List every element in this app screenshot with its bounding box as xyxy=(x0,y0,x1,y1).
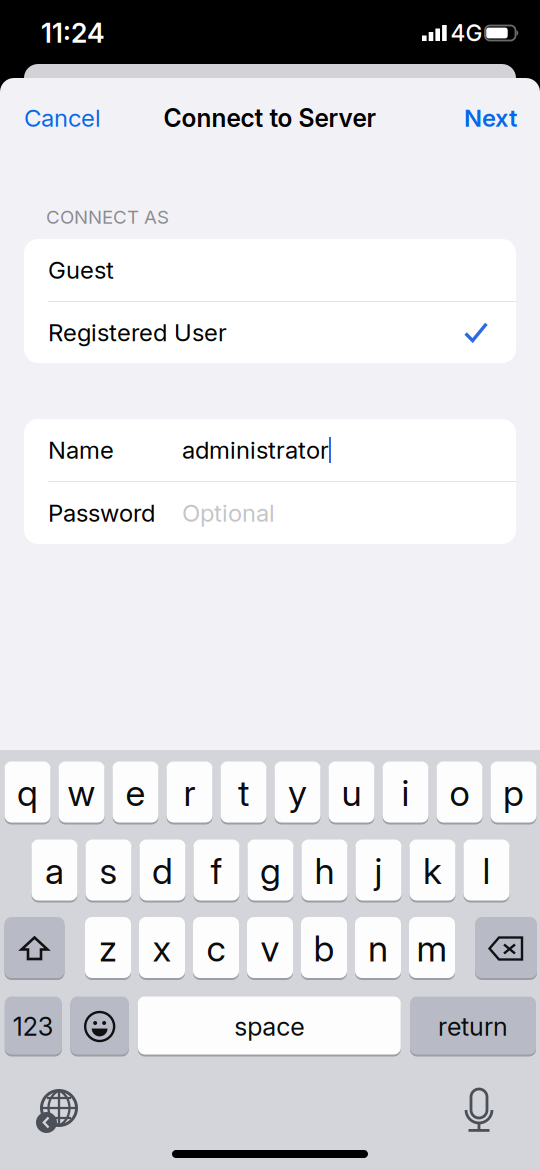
staticText: t xyxy=(238,771,249,815)
staticText: Cancel xyxy=(24,103,101,132)
staticText: Name xyxy=(48,435,114,464)
button[interactable]: f xyxy=(193,839,239,902)
button[interactable]: b xyxy=(301,917,347,980)
button[interactable]: Emoji xyxy=(70,996,129,1056)
button[interactable]: y xyxy=(274,761,320,824)
staticText: j xyxy=(374,849,382,893)
button[interactable]: Cancel xyxy=(16,96,109,140)
staticText: return xyxy=(438,1011,508,1042)
staticText: r xyxy=(183,771,195,815)
button[interactable]: m xyxy=(409,917,455,980)
staticText: Guest xyxy=(48,255,114,284)
staticText: o xyxy=(449,771,469,815)
button[interactable]: k xyxy=(409,839,455,902)
button[interactable]: Delete xyxy=(475,917,537,980)
button[interactable]: Optional xyxy=(182,482,492,544)
staticText: i xyxy=(401,771,409,815)
staticText: Registered User xyxy=(48,318,227,347)
button[interactable]: s xyxy=(85,839,131,902)
staticText: u xyxy=(341,771,361,815)
staticText: p xyxy=(503,771,524,815)
button[interactable]: t xyxy=(220,761,266,824)
button[interactable]: o xyxy=(436,761,482,824)
button[interactable]: v xyxy=(247,917,293,980)
staticText: CONNECT AS xyxy=(46,206,169,228)
staticText: q xyxy=(17,771,38,815)
staticText: d xyxy=(152,849,173,893)
button[interactable]: d xyxy=(139,839,185,902)
staticText: g xyxy=(260,849,281,893)
staticText: c xyxy=(206,927,225,970)
button[interactable]: r xyxy=(166,761,212,824)
button[interactable]: e xyxy=(112,761,158,824)
button[interactable]: h xyxy=(301,839,347,902)
staticText: x xyxy=(152,927,171,970)
button[interactable]: Next keyboard xyxy=(36,1089,82,1133)
staticText: Optional xyxy=(182,498,275,527)
button[interactable]: space xyxy=(138,996,401,1056)
staticText: Next xyxy=(464,103,517,132)
button[interactable]: a xyxy=(31,839,77,902)
button[interactable]: Next xyxy=(456,96,525,140)
staticText: y xyxy=(288,771,307,815)
staticText: s xyxy=(99,849,117,893)
button[interactable]: u xyxy=(328,761,374,824)
button[interactable]: Shift xyxy=(4,917,64,980)
staticText: v xyxy=(260,927,279,970)
staticText: Password xyxy=(48,498,155,527)
staticText: administrator xyxy=(182,435,329,464)
button[interactable]: x xyxy=(139,917,185,980)
staticText: n xyxy=(368,927,388,970)
staticText: f xyxy=(210,849,222,893)
staticText: k xyxy=(423,849,442,893)
button[interactable]: l xyxy=(463,839,509,902)
button[interactable]: return xyxy=(410,996,536,1056)
button[interactable]: Registered User xyxy=(24,302,516,363)
staticText: 4G xyxy=(450,19,482,47)
button[interactable]: Dictation xyxy=(461,1089,497,1133)
staticText: b xyxy=(313,927,334,970)
staticText: Connect to Server xyxy=(163,103,376,133)
button[interactable]: w xyxy=(58,761,104,824)
button[interactable]: p xyxy=(490,761,536,824)
button[interactable]: n xyxy=(355,917,401,980)
button[interactable]: Guest xyxy=(24,239,516,301)
button[interactable]: administrator xyxy=(182,419,492,481)
staticText: e xyxy=(125,771,145,815)
button[interactable]: z xyxy=(85,917,131,980)
staticText: a xyxy=(45,849,64,893)
staticText: space xyxy=(234,1011,304,1042)
button[interactable]: i xyxy=(382,761,428,824)
staticText: 11:24 xyxy=(41,17,105,49)
staticText: w xyxy=(67,771,95,815)
button[interactable]: g xyxy=(247,839,293,902)
staticText: 123 xyxy=(13,1011,54,1042)
staticText: h xyxy=(314,849,334,893)
button[interactable]: q xyxy=(4,761,50,824)
button[interactable]: c xyxy=(193,917,239,980)
staticText: z xyxy=(99,927,117,970)
button[interactable]: 123 xyxy=(5,996,62,1056)
button[interactable]: j xyxy=(355,839,401,902)
staticText: l xyxy=(482,849,490,893)
staticText: m xyxy=(416,927,447,970)
